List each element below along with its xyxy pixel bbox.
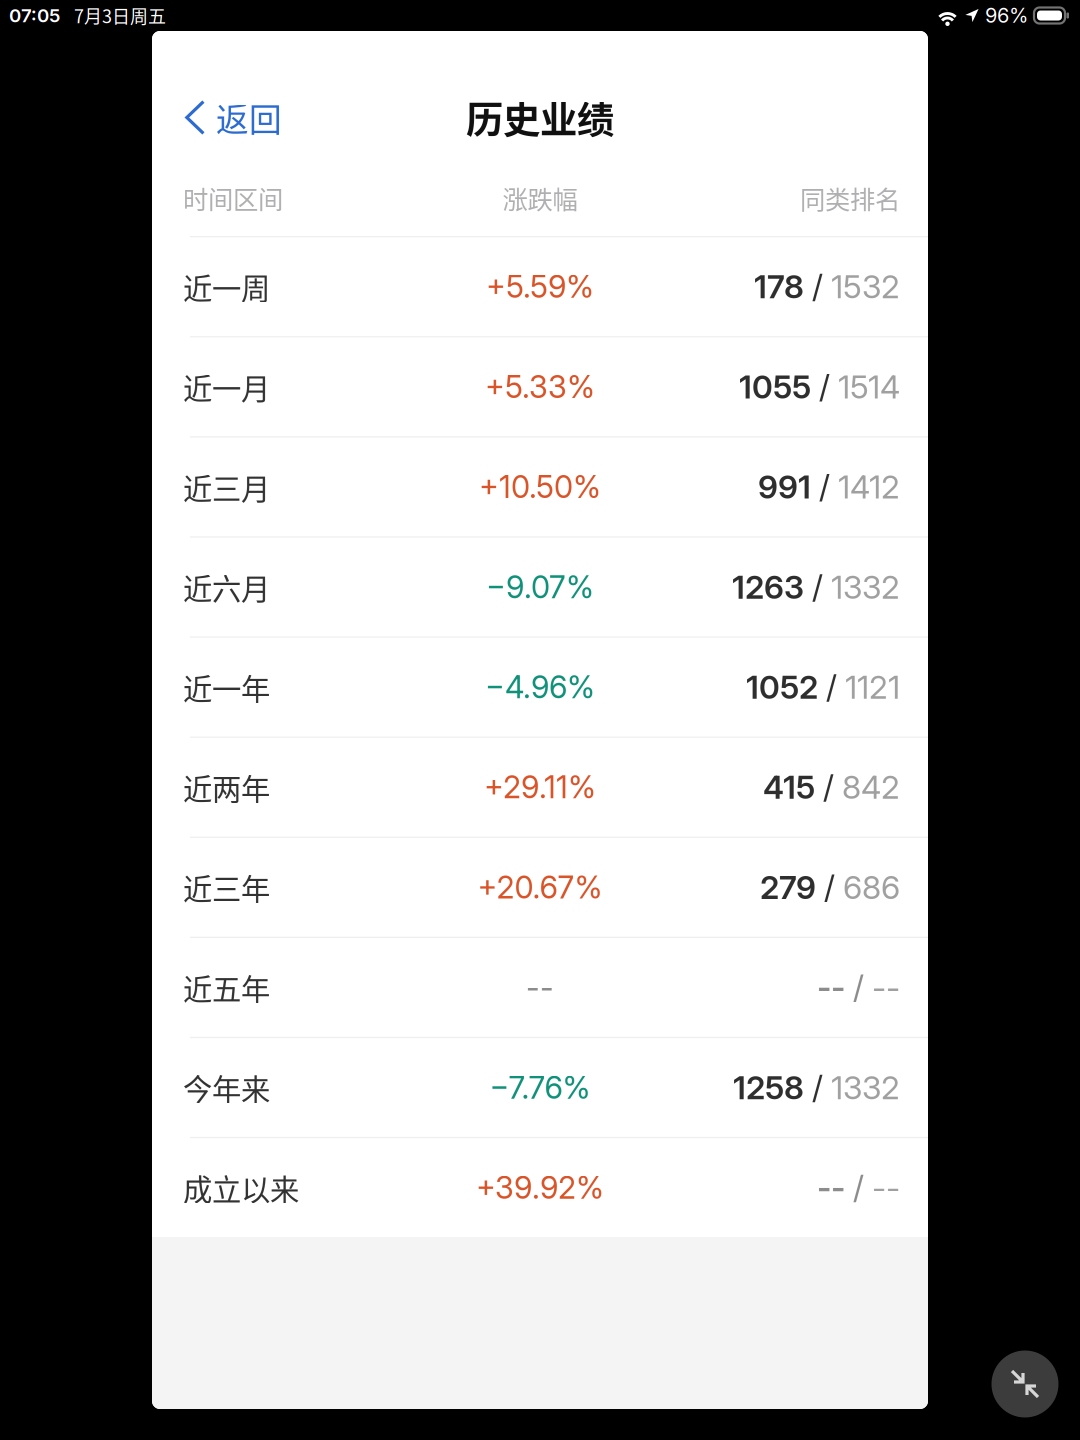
staticText: 近三月 bbox=[183, 466, 270, 508]
staticText: 近一月 bbox=[183, 366, 270, 408]
staticText: / bbox=[804, 1068, 831, 1107]
staticText: 历史业绩 bbox=[466, 90, 614, 145]
staticText: 7月3日周五 bbox=[74, 2, 166, 29]
button[interactable]: 近一月 bbox=[152, 337, 928, 436]
staticText: 近两年 bbox=[183, 766, 270, 808]
staticText: +10.50% bbox=[479, 468, 601, 505]
staticText: 1532 bbox=[831, 267, 900, 306]
staticText: / bbox=[804, 267, 831, 306]
staticText: +5.59% bbox=[486, 268, 594, 305]
staticText: 1332 bbox=[831, 1068, 900, 1107]
button[interactable]: 近三月 bbox=[152, 437, 928, 536]
staticText: 1121 bbox=[845, 668, 900, 706]
staticText: / bbox=[845, 1168, 872, 1207]
staticText: +29.11% bbox=[484, 769, 596, 806]
button[interactable]: 近一年 bbox=[152, 638, 928, 736]
staticText: / bbox=[815, 768, 842, 806]
staticText: 842 bbox=[842, 768, 900, 806]
staticText: 近五年 bbox=[183, 966, 270, 1009]
staticText: 1412 bbox=[838, 467, 900, 506]
staticText: 1332 bbox=[831, 568, 900, 606]
staticText: 时间区间 bbox=[183, 180, 283, 216]
staticText: 1052 bbox=[746, 668, 818, 706]
staticText: -- bbox=[817, 968, 845, 1007]
staticText: 178 bbox=[754, 267, 804, 306]
staticText: / bbox=[845, 968, 872, 1007]
staticText: +5.33% bbox=[485, 368, 595, 405]
staticText: 返回 bbox=[216, 94, 282, 141]
button[interactable]: 返回 bbox=[152, 69, 304, 166]
staticText: 同类排名 bbox=[800, 180, 900, 216]
staticText: / bbox=[811, 467, 838, 506]
staticText: −4.96% bbox=[485, 668, 595, 706]
staticText: -- bbox=[872, 1168, 900, 1207]
staticText: −7.76% bbox=[489, 1069, 590, 1106]
staticText: / bbox=[816, 868, 843, 907]
staticText: 近三年 bbox=[183, 866, 270, 909]
staticText: 1514 bbox=[838, 367, 900, 406]
staticText: / bbox=[811, 367, 838, 406]
staticText: 686 bbox=[843, 868, 900, 907]
staticText: 近六月 bbox=[183, 566, 270, 608]
staticText: 279 bbox=[760, 868, 816, 907]
staticText: 07:05 bbox=[9, 4, 60, 27]
button[interactable]: 成立以来 bbox=[152, 1138, 928, 1237]
staticText: 涨跌幅 bbox=[502, 180, 577, 216]
button[interactable]: 近五年 bbox=[152, 938, 928, 1037]
staticText: 991 bbox=[758, 467, 811, 506]
staticText: 1263 bbox=[732, 568, 804, 606]
staticText: 近一年 bbox=[183, 666, 270, 708]
staticText: +20.67% bbox=[477, 869, 602, 906]
staticText: 96% bbox=[985, 3, 1028, 28]
staticText: -- bbox=[817, 1168, 845, 1207]
staticText: -- bbox=[872, 968, 900, 1007]
staticText: 今年来 bbox=[183, 1066, 270, 1109]
staticText: / bbox=[818, 668, 845, 706]
staticText: 成立以来 bbox=[183, 1166, 299, 1209]
staticText: 近一周 bbox=[183, 265, 270, 308]
button[interactable]: 近一周 bbox=[152, 237, 928, 336]
staticText: 415 bbox=[763, 768, 815, 806]
staticText: 1258 bbox=[733, 1068, 804, 1107]
staticText: −9.07% bbox=[486, 568, 594, 605]
button[interactable]: 近六月 bbox=[152, 538, 928, 636]
button[interactable]: 近两年 bbox=[152, 738, 928, 837]
button[interactable]: 收起 bbox=[977, 1336, 1073, 1432]
staticText: / bbox=[804, 568, 831, 606]
button[interactable]: 今年来 bbox=[152, 1038, 928, 1137]
staticText: +39.92% bbox=[476, 1169, 604, 1206]
staticText: -- bbox=[526, 969, 554, 1006]
button[interactable]: 近三年 bbox=[152, 838, 928, 937]
staticText: 1055 bbox=[739, 367, 811, 406]
